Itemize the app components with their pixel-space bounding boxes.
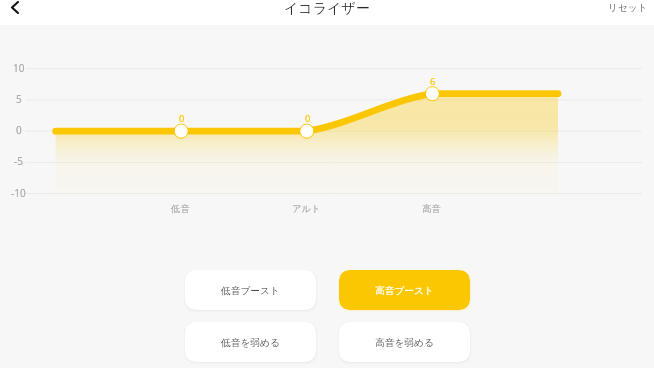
staticText: 高音を弱める [375, 337, 434, 349]
staticText: -5 [14, 154, 23, 168]
staticText: アルト [292, 203, 321, 215]
staticText: 高音ブースト [375, 285, 434, 297]
button[interactable]: 低音ブースト [185, 270, 316, 310]
staticText: 0 [179, 112, 185, 125]
button[interactable]: 低音を弱める [185, 322, 316, 362]
staticText: 高音 [422, 203, 441, 215]
staticText: イコライザー [284, 0, 370, 18]
button[interactable]: リセット [608, 2, 648, 14]
staticText: 低音 [171, 203, 190, 215]
staticText: 0 [16, 123, 22, 137]
button[interactable]: 高音ブースト [339, 270, 470, 310]
button[interactable]: Back [2, 0, 27, 20]
staticText: 0 [305, 112, 311, 125]
staticText: 10 [13, 61, 25, 75]
staticText: 低音ブースト [221, 285, 280, 297]
staticText: 低音を弱める [221, 337, 280, 349]
staticText: -10 [11, 186, 26, 200]
staticText: 6 [430, 75, 436, 88]
button[interactable]: 高音を弱める [339, 322, 470, 362]
staticText: 5 [16, 92, 22, 106]
